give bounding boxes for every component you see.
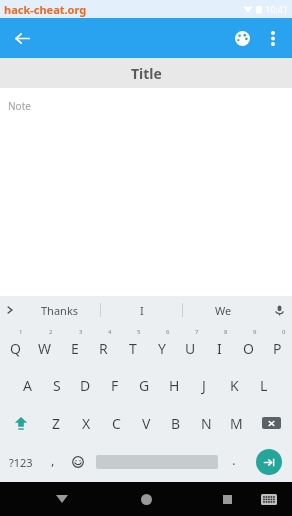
staticText: O <box>243 339 254 358</box>
staticText: 2 <box>49 328 53 336</box>
staticText: P <box>273 339 282 358</box>
staticText: B <box>171 414 181 433</box>
button[interactable]: Backspace <box>251 404 292 442</box>
button[interactable]: We <box>183 296 264 324</box>
button[interactable]: V <box>131 404 161 442</box>
button[interactable]: Back <box>6 22 38 54</box>
staticText: Y <box>158 339 166 358</box>
button[interactable]: P <box>263 324 292 366</box>
button[interactable]: Switch keyboard <box>254 484 284 514</box>
staticText: M <box>230 414 243 433</box>
staticText: U <box>185 339 196 358</box>
button[interactable]: B <box>161 404 191 442</box>
button[interactable]: J <box>189 366 219 404</box>
staticText: C <box>112 414 121 433</box>
button[interactable]: Recent apps <box>212 484 242 514</box>
staticText: 10:41 <box>265 3 289 15</box>
button[interactable]: I <box>101 296 182 324</box>
staticText: D <box>80 376 91 395</box>
button[interactable]: Thanks <box>20 296 100 324</box>
staticText: S <box>53 376 61 395</box>
button[interactable]: Z <box>41 404 71 442</box>
staticText: Title <box>131 64 162 83</box>
button[interactable]: Home <box>126 482 166 516</box>
staticText: G <box>139 376 150 395</box>
button[interactable]: S <box>42 366 71 404</box>
staticText: Z <box>52 414 61 433</box>
staticText: E <box>71 339 79 358</box>
staticText: Thanks <box>41 303 79 318</box>
staticText: . <box>232 451 236 469</box>
staticText: V <box>142 414 151 433</box>
button[interactable]: Title <box>0 58 292 88</box>
staticText: , <box>51 451 55 469</box>
button[interactable]: F <box>100 366 129 404</box>
button[interactable]: U <box>176 324 205 366</box>
staticText: Q <box>10 339 21 358</box>
button[interactable]: R <box>89 324 118 366</box>
staticText: ?123 <box>9 455 33 470</box>
staticText: T <box>129 339 137 358</box>
staticText: I <box>217 339 222 358</box>
button[interactable]: Color palette <box>226 22 258 54</box>
staticText: 8 <box>224 328 228 336</box>
button[interactable]: O <box>234 324 263 366</box>
staticText: A <box>23 376 32 395</box>
button[interactable]: E <box>60 324 89 366</box>
staticText: 3 <box>79 328 83 336</box>
staticText: 7 <box>195 328 199 336</box>
button[interactable]: H <box>159 366 189 404</box>
button[interactable]: X <box>71 404 101 442</box>
button[interactable]: Voice input <box>266 297 292 323</box>
staticText: H <box>169 376 180 395</box>
button[interactable]: ?123 <box>0 442 41 482</box>
button[interactable]: Q <box>0 324 30 366</box>
staticText: 0 <box>282 328 286 336</box>
button[interactable]: Back <box>0 482 123 516</box>
staticText: X <box>82 414 91 433</box>
button[interactable]: T <box>118 324 147 366</box>
button[interactable]: D <box>71 366 100 404</box>
staticText: hack-cheat.org <box>4 2 87 17</box>
button[interactable]: , <box>41 442 64 482</box>
staticText: R <box>99 339 108 358</box>
staticText: N <box>201 414 212 433</box>
staticText: Note <box>8 99 31 113</box>
staticText: 9 <box>253 328 257 336</box>
button[interactable]: Expand suggestions <box>0 297 20 323</box>
staticText: F <box>111 376 119 395</box>
staticText: 5 <box>137 328 141 336</box>
staticText: I <box>140 303 144 318</box>
staticText: L <box>260 376 268 395</box>
button[interactable]: More options <box>258 23 288 53</box>
button[interactable]: . <box>222 442 245 482</box>
button[interactable]: Y <box>147 324 176 366</box>
button[interactable]: M <box>221 404 251 442</box>
staticText: 1 <box>19 328 23 336</box>
button[interactable]: K <box>219 366 249 404</box>
button[interactable]: A <box>13 366 42 404</box>
button[interactable]: Space <box>91 442 222 482</box>
staticText: W <box>38 339 52 358</box>
button[interactable]: Enter <box>245 442 292 482</box>
button[interactable]: C <box>101 404 131 442</box>
staticText: J <box>202 376 206 395</box>
button[interactable]: N <box>191 404 221 442</box>
staticText: K <box>230 376 239 395</box>
button[interactable]: Emoji <box>64 442 91 482</box>
staticText: 6 <box>166 328 170 336</box>
button[interactable]: G <box>129 366 159 404</box>
staticText: 4 <box>108 328 112 336</box>
button[interactable]: Shift <box>0 404 41 442</box>
button[interactable]: I <box>205 324 234 366</box>
button[interactable]: W <box>30 324 60 366</box>
button[interactable]: L <box>249 366 279 404</box>
staticText: We <box>215 303 232 318</box>
